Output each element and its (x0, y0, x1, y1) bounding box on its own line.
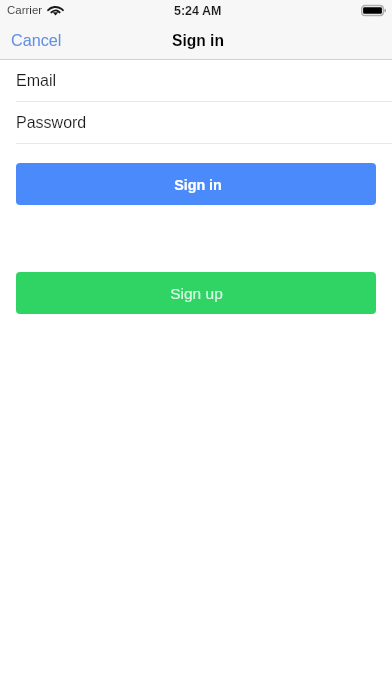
other: Battery (361, 5, 387, 16)
button[interactable]: Password (0, 102, 392, 143)
button[interactable]: Sign up (16, 272, 376, 314)
staticText: Sign up (170, 285, 223, 302)
button[interactable]: Email (0, 60, 392, 101)
staticText: Carrier (7, 4, 43, 17)
staticText: Sign in (174, 177, 222, 193)
button[interactable]: Cancel (0, 23, 73, 55)
staticText: Sign in (172, 32, 224, 49)
other: Wi-Fi (49, 5, 62, 15)
staticText: Password (16, 114, 87, 132)
staticText: Email (16, 72, 57, 90)
staticText: 5:24 AM (174, 4, 222, 18)
staticText: Cancel (11, 31, 62, 49)
button[interactable]: Sign in (16, 163, 376, 205)
